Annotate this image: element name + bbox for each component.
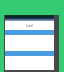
staticText: Label	[5, 24, 54, 28]
